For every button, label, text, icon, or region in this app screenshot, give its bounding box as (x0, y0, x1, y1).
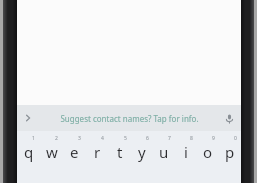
staticText: e (70, 142, 79, 162)
staticText: p (225, 142, 235, 162)
button[interactable]: 8 (175, 133, 197, 169)
staticText: u (159, 142, 169, 162)
staticText: q (24, 142, 34, 162)
button[interactable]: Expand suggestions (17, 105, 39, 131)
staticText: 2 (55, 135, 58, 142)
button[interactable]: 2 (40, 133, 63, 169)
staticText: y (138, 142, 146, 162)
staticText: 0 (234, 135, 237, 142)
button[interactable]: 5 (109, 133, 131, 169)
staticText: r (94, 142, 101, 162)
staticText: 4 (101, 135, 104, 142)
staticText: i (184, 142, 188, 162)
button[interactable]: 1 (17, 133, 40, 169)
button[interactable]: Suggest contact names? Tap for info. (41, 105, 217, 131)
button[interactable]: 9 (197, 133, 219, 169)
staticText: t (117, 142, 123, 162)
button[interactable]: 3 (63, 133, 86, 169)
staticText: 6 (146, 135, 149, 142)
button[interactable]: 7 (153, 133, 175, 169)
staticText: 3 (78, 135, 81, 142)
staticText: 8 (190, 135, 193, 142)
button[interactable]: 0 (219, 133, 241, 169)
staticText: o (203, 142, 213, 162)
staticText: Suggest contact names? Tap for info. (60, 113, 199, 124)
button[interactable]: Voice input (217, 105, 241, 131)
button[interactable]: 6 (131, 133, 153, 169)
staticText: w (46, 142, 58, 162)
staticText: 7 (168, 135, 171, 142)
staticText: 1 (32, 135, 35, 142)
staticText: 9 (212, 135, 215, 142)
staticText: 5 (124, 135, 127, 142)
button[interactable]: 4 (86, 133, 109, 169)
